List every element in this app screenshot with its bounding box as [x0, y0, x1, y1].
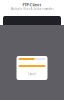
button[interactable] [18, 65, 45, 67]
staticText: Multiple files & folder transfer [10, 7, 53, 11]
staticText: Cancel [27, 72, 36, 76]
staticText: FTP Client [22, 2, 41, 7]
